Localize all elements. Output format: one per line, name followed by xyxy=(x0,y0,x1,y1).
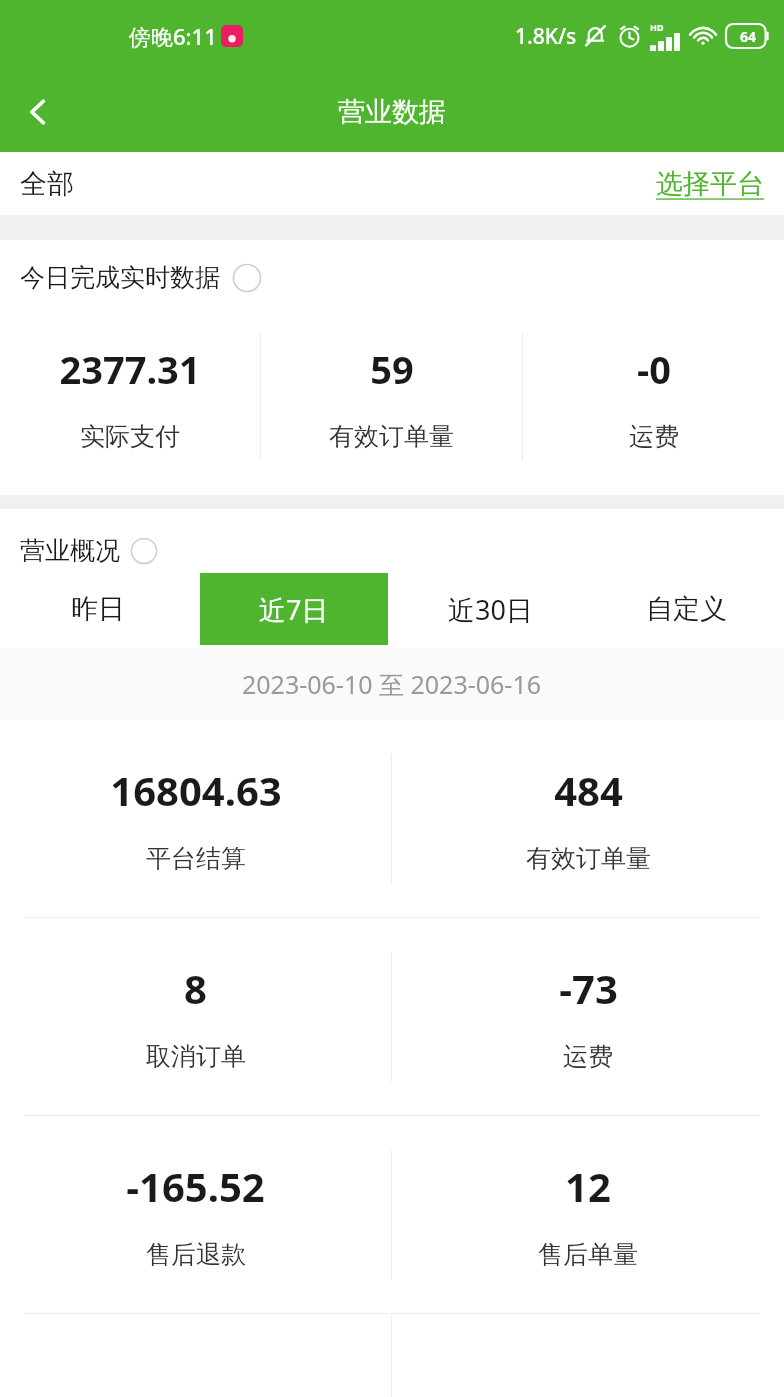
button[interactable]: 2377.31 xyxy=(0,343,260,452)
staticText: 选择平台 xyxy=(656,167,764,201)
staticText: 2377.31 xyxy=(59,343,201,395)
button[interactable]: 近7日 xyxy=(200,573,388,645)
staticText: 全部 xyxy=(20,167,74,201)
button[interactable]: 说明 xyxy=(130,537,158,565)
staticText: 售后退款 xyxy=(146,1239,246,1270)
button[interactable]: 返回 xyxy=(0,74,76,150)
staticText: 8 xyxy=(184,961,207,1015)
staticText: 近30日 xyxy=(448,591,533,628)
button[interactable]: 16804.63 xyxy=(0,763,391,874)
staticText: 64 xyxy=(740,27,757,46)
button[interactable]: 484 xyxy=(392,763,784,874)
staticText: 平台结算 xyxy=(146,843,246,874)
staticText: -0 xyxy=(637,343,671,395)
button[interactable]: 说明 xyxy=(232,263,262,293)
button[interactable]: 昨日 xyxy=(0,573,196,645)
staticText: 售后单量 xyxy=(538,1239,638,1270)
button[interactable]: 自定义 xyxy=(588,573,784,645)
staticText: 近7日 xyxy=(259,591,329,628)
staticText: 今日完成实时数据 xyxy=(20,262,220,293)
staticText: HD xyxy=(650,21,664,33)
button[interactable]: -73 xyxy=(392,961,784,1072)
button[interactable]: -0 xyxy=(523,343,784,452)
staticText: 取消订单 xyxy=(146,1041,246,1072)
staticText: 实际支付 xyxy=(80,421,180,452)
staticText: 59 xyxy=(370,343,414,395)
staticText: 1.8K/s xyxy=(515,22,577,51)
button[interactable]: -165.52 xyxy=(0,1159,391,1270)
staticText: 2023-06-10 至 2023-06-16 xyxy=(242,667,542,701)
staticText: 傍晚6:11 xyxy=(129,21,217,51)
staticText: 16804.63 xyxy=(110,763,282,817)
button[interactable]: 12 xyxy=(392,1159,784,1270)
staticText: 运费 xyxy=(563,1041,613,1072)
button[interactable]: 59 xyxy=(261,343,522,452)
staticText: 营业数据 xyxy=(338,95,446,129)
staticText: 营业概况 xyxy=(20,535,120,566)
staticText: 484 xyxy=(554,763,623,817)
button[interactable]: 8 xyxy=(0,961,391,1072)
staticText: 有效订单量 xyxy=(526,843,651,874)
staticText: 有效订单量 xyxy=(329,421,454,452)
staticText: 昨日 xyxy=(71,592,125,626)
button[interactable]: 近30日 xyxy=(392,573,588,645)
staticText: -73 xyxy=(559,961,618,1015)
staticText: 12 xyxy=(565,1159,611,1213)
button[interactable]: 选择平台 xyxy=(656,161,764,207)
staticText: 运费 xyxy=(629,421,679,452)
staticText: 自定义 xyxy=(646,592,727,626)
staticText: -165.52 xyxy=(126,1159,265,1213)
